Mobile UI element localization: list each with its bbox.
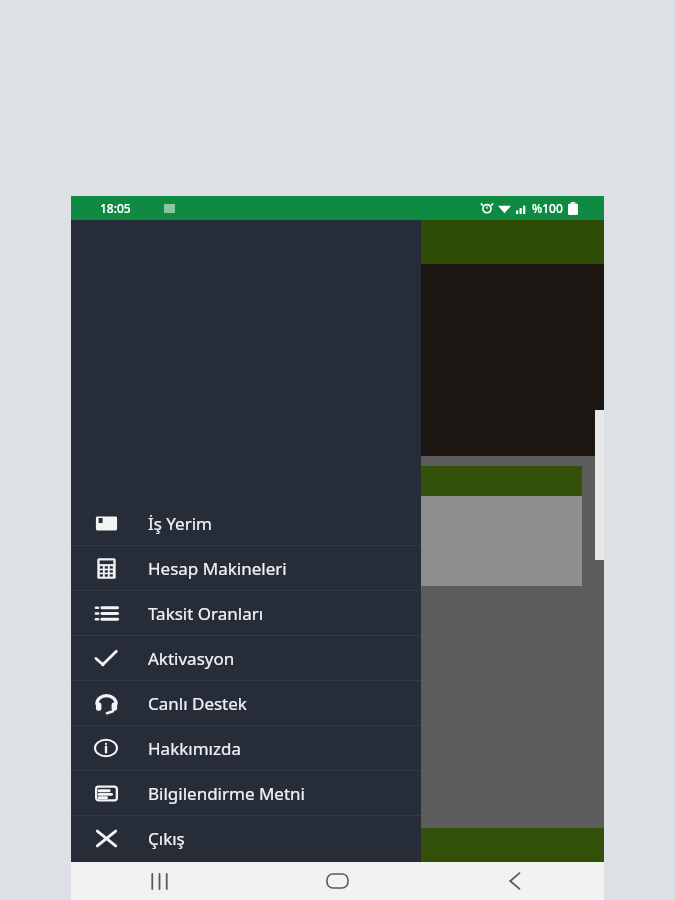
button[interactable]: Back bbox=[426, 862, 604, 900]
staticText: 18:05 bbox=[100, 200, 131, 216]
button[interactable]: Home bbox=[248, 862, 426, 900]
button[interactable]: Bilgilendirme Metni bbox=[71, 771, 421, 815]
button[interactable]: Çıkış bbox=[71, 816, 421, 860]
staticText: İş Yerim bbox=[148, 512, 212, 535]
staticText: Bilgilendirme Metni bbox=[148, 782, 305, 805]
staticText: Canlı Destek bbox=[148, 692, 247, 715]
button[interactable]: İş Yerim bbox=[71, 501, 421, 545]
button[interactable]: Hesap Makineleri bbox=[71, 546, 421, 590]
staticText: Hakkımızda bbox=[148, 737, 241, 760]
staticText: %100 bbox=[532, 200, 563, 216]
staticText: Bu alandan Aktivasyon bilgilerinizi ve d… bbox=[93, 502, 236, 586]
staticText: Taksit Oranları bbox=[148, 602, 264, 625]
button[interactable]: Hakkımızda bbox=[71, 726, 421, 770]
staticText: Hesap Makineleri bbox=[148, 557, 287, 580]
staticText: Aktivasyon bbox=[148, 647, 235, 670]
button[interactable]: Taksit Oranları bbox=[71, 591, 421, 635]
staticText: Çıkış bbox=[148, 827, 185, 850]
button[interactable]: Canlı Destek bbox=[71, 681, 421, 725]
button[interactable]: Aktivasyon bbox=[71, 636, 421, 680]
button[interactable]: Recent apps bbox=[71, 862, 248, 900]
staticText: 0 22 bbox=[85, 600, 135, 634]
